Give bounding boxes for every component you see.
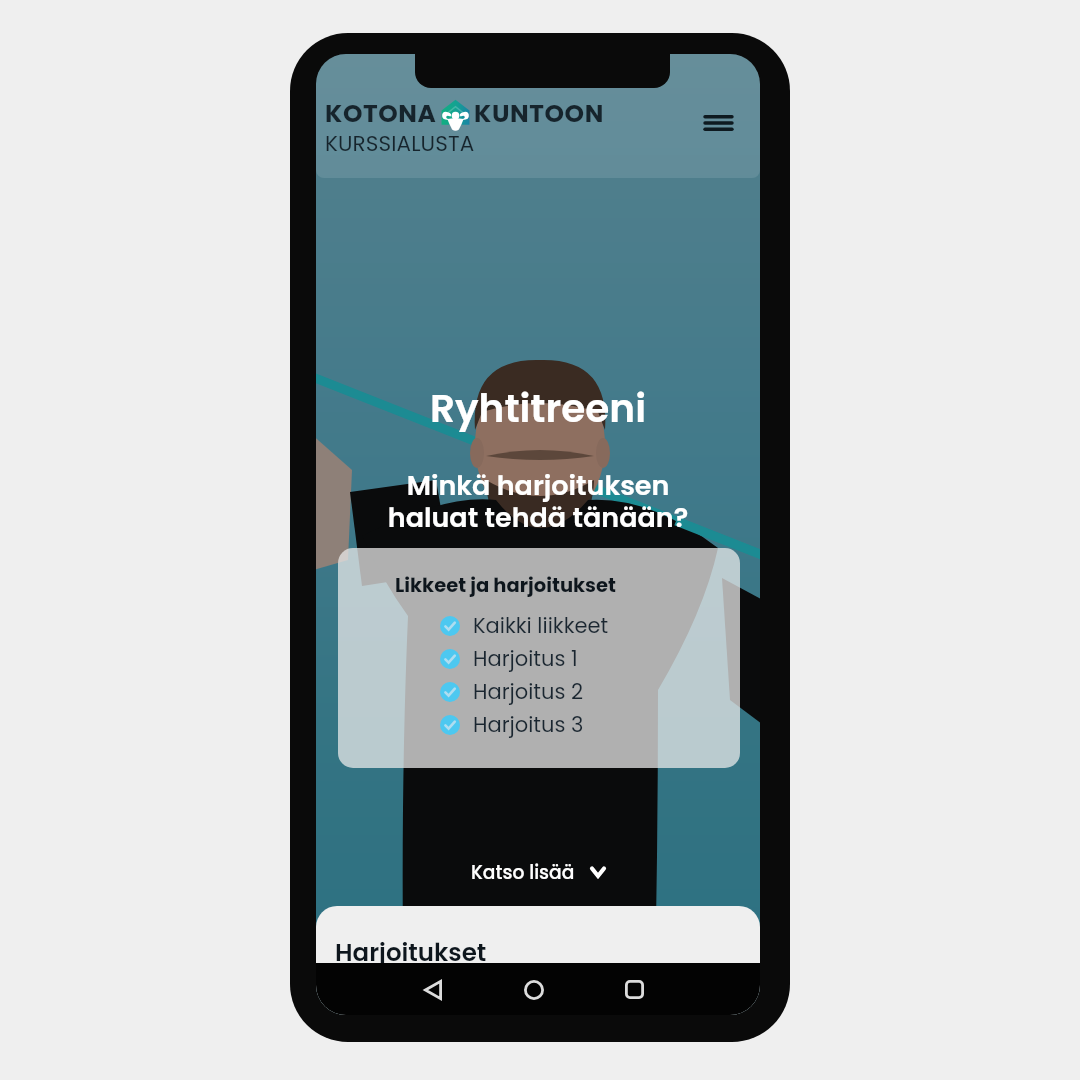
staticText: Harjoitus 3	[473, 710, 584, 739]
button[interactable]: Harjoitus 2	[440, 675, 584, 708]
button[interactable]: Home	[508, 964, 559, 1015]
button[interactable]: Kaikki liikkeet	[440, 609, 609, 642]
staticText: Kaikki liikkeet	[473, 611, 609, 640]
staticText: Ryhtitreeni	[316, 381, 760, 436]
staticText: Harjoitus 2	[473, 677, 584, 706]
staticText: Harjoitus 1	[473, 644, 578, 673]
staticText: KOTONA	[325, 96, 437, 131]
staticText: KURSSIALUSTA	[325, 128, 475, 158]
button[interactable]: Back	[407, 964, 458, 1015]
button[interactable]: Menu	[698, 103, 738, 143]
staticText: Likkeet ja harjoitukset	[395, 572, 616, 599]
button[interactable]: Harjoitus 3	[440, 708, 584, 741]
staticText: KUNTOON	[474, 96, 604, 131]
button[interactable]: Harjoitus 1	[440, 642, 578, 675]
button[interactable]: Recents	[609, 964, 660, 1015]
staticText: Minkä harjoituksen haluat tehdä tänään?	[316, 467, 760, 536]
button[interactable]: Katso lisää	[471, 851, 606, 893]
staticText: Katso lisää	[471, 859, 575, 885]
staticText: Harjoitukset	[335, 935, 487, 969]
